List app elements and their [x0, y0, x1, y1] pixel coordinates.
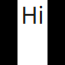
staticText: Hi — [21, 0, 44, 30]
